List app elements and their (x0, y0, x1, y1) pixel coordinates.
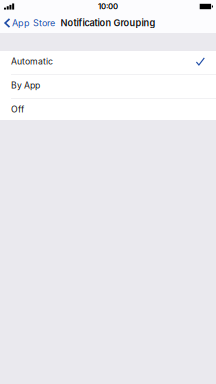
button[interactable]: Off (0, 99, 216, 120)
staticText: Automatic (11, 56, 53, 67)
staticText: Notification Grouping (60, 17, 155, 28)
staticText: Off (11, 104, 24, 115)
staticText: App Store (12, 17, 55, 28)
button[interactable]: Automatic (0, 51, 216, 75)
staticText: 10:00 (98, 2, 118, 11)
button[interactable]: By App (0, 75, 216, 99)
button[interactable]: App Store (0, 14, 60, 31)
staticText: By App (11, 80, 40, 91)
